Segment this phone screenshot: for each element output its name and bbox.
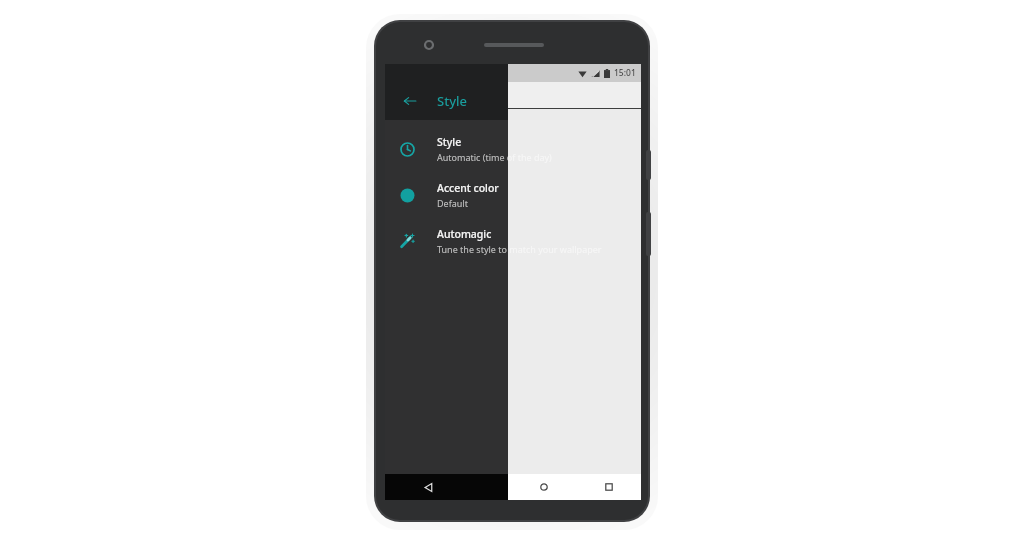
button[interactable]: Automagic [385,218,641,264]
button[interactable]: Recents [556,474,641,500]
staticText: 15:01 [614,67,636,79]
button[interactable]: Back [395,86,425,116]
staticText: Accent color [437,181,499,195]
button[interactable]: Home [511,474,576,500]
button[interactable]: Style [385,126,641,172]
button[interactable]: Home [471,474,556,500]
button[interactable]: Recents [576,474,641,500]
staticText: Default [437,197,468,209]
button[interactable]: Back [385,474,471,500]
staticText: Style [437,92,467,110]
staticText: Automatic (time of the day) [437,151,552,163]
staticText: Style [437,135,462,149]
button[interactable]: Accent color [385,172,641,218]
staticText: Tune the style to match your wallpaper [437,243,602,255]
staticText: Automagic [437,227,492,241]
